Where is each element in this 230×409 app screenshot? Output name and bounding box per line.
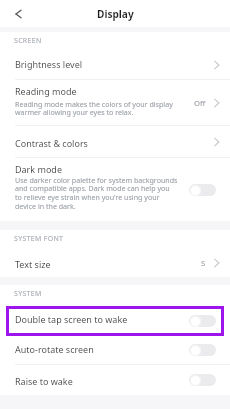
staticText: Display (97, 7, 134, 21)
staticText: SYSTEM (14, 289, 42, 299)
button[interactable]: Toggle switch (189, 184, 216, 196)
button[interactable]: Toggle switch (189, 344, 216, 356)
staticText: Raise to wake (15, 375, 73, 387)
staticText: Brightness level (15, 58, 83, 70)
staticText: Use darker color palette for system back… (15, 175, 178, 211)
staticText: Reading mode (15, 85, 77, 97)
staticText: Contrast & colors (15, 137, 88, 149)
staticText: Double tap screen to wake (15, 313, 128, 325)
staticText: Off (194, 98, 206, 108)
button[interactable]: Double tap screen to wake (6, 306, 224, 336)
staticText: Reading mode makes the colors of your di… (15, 99, 173, 117)
button[interactable]: Dark mode (0, 158, 230, 221)
button[interactable]: Brightness level (0, 51, 230, 79)
staticText: Text size (15, 258, 51, 270)
button[interactable]: Toggle switch (189, 374, 216, 386)
button[interactable]: Contrast & colors (0, 126, 230, 157)
staticText: S (201, 258, 206, 268)
button[interactable]: Auto-rotate screen (0, 336, 230, 364)
staticText: SCREEN (14, 36, 42, 46)
staticText: Dark mode (15, 163, 62, 175)
button[interactable]: Back (7, 3, 29, 25)
button[interactable]: Raise to wake (0, 365, 230, 395)
button[interactable]: Reading mode (0, 80, 230, 125)
staticText: SYSTEM FONT (14, 234, 64, 244)
button[interactable]: Text size (0, 249, 230, 277)
button[interactable]: Toggle switch (189, 315, 216, 327)
staticText: Auto-rotate screen (15, 343, 94, 355)
